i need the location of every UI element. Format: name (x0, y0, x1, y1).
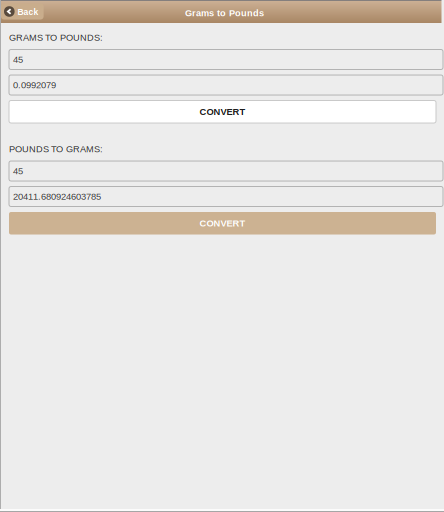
staticText: 20411.680924603785 (13, 191, 101, 202)
staticText: CONVERT (199, 106, 245, 117)
button[interactable]: CONVERT (9, 100, 436, 123)
staticText: 45 (13, 54, 23, 65)
staticText: Back (18, 7, 39, 17)
button[interactable]: Back (1, 3, 44, 19)
button[interactable]: CONVERT (9, 212, 436, 234)
staticText: 0.0992079 (13, 80, 56, 90)
staticText: Grams to Pounds (185, 8, 264, 18)
staticText: GRAMS TO POUNDS: (9, 32, 103, 43)
staticText: CONVERT (199, 218, 245, 228)
staticText: POUNDS TO GRAMS: (9, 144, 103, 154)
staticText: 45 (13, 166, 23, 176)
